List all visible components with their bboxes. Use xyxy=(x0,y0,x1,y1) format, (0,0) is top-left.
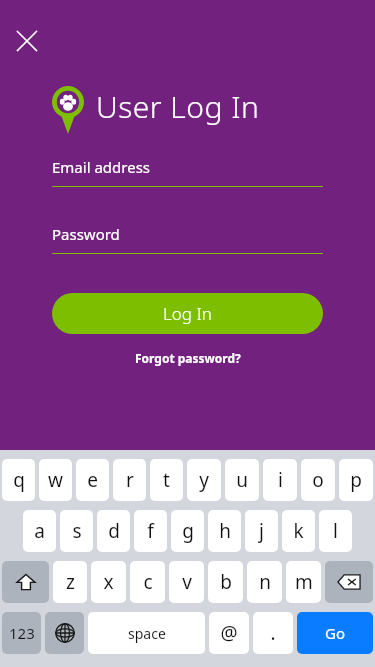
staticText: @ xyxy=(220,620,238,646)
button[interactable]: a xyxy=(23,510,56,552)
button[interactable]: c xyxy=(130,561,165,603)
button[interactable]: Password xyxy=(52,221,323,254)
button[interactable]: i xyxy=(263,459,297,501)
staticText: a xyxy=(34,518,45,544)
staticText: e xyxy=(87,467,98,493)
button[interactable]: Shift xyxy=(2,561,49,603)
button[interactable]: Forgot password? xyxy=(131,346,245,370)
button[interactable]: m xyxy=(286,561,321,603)
button[interactable]: f xyxy=(134,510,167,552)
button[interactable]: w xyxy=(39,459,72,501)
button[interactable]: Go xyxy=(297,612,373,654)
button[interactable]: x xyxy=(91,561,126,603)
staticText: q xyxy=(13,467,25,493)
staticText: space xyxy=(128,624,166,643)
button[interactable]: Log In xyxy=(52,293,323,334)
staticText: Go xyxy=(325,623,345,643)
staticText: u xyxy=(236,467,248,493)
button[interactable]: s xyxy=(60,510,93,552)
button[interactable]: e xyxy=(76,459,109,501)
button[interactable]: Backspace xyxy=(325,561,373,603)
button[interactable]: u xyxy=(225,459,259,501)
staticText: j xyxy=(259,518,264,544)
staticText: r xyxy=(126,467,134,493)
staticText: x xyxy=(103,569,114,595)
staticText: n xyxy=(259,569,271,595)
staticText: b xyxy=(220,569,232,595)
staticText: 123 xyxy=(9,623,35,643)
staticText: o xyxy=(312,467,324,493)
staticText: Email address xyxy=(52,157,151,177)
button[interactable]: v xyxy=(169,561,204,603)
button[interactable]: j xyxy=(245,510,278,552)
button[interactable]: p xyxy=(339,459,373,501)
button[interactable]: Close xyxy=(10,24,44,58)
button[interactable]: t xyxy=(150,459,183,501)
staticText: . xyxy=(270,620,276,646)
button[interactable]: d xyxy=(97,510,130,552)
staticText: p xyxy=(350,467,362,493)
staticText: i xyxy=(278,467,283,493)
button[interactable]: k xyxy=(282,510,315,552)
button[interactable]: g xyxy=(171,510,204,552)
staticText: t xyxy=(163,467,170,493)
staticText: c xyxy=(143,569,153,595)
staticText: Forgot password? xyxy=(135,350,241,366)
button[interactable]: h xyxy=(208,510,241,552)
button[interactable]: o xyxy=(301,459,335,501)
staticText: g xyxy=(182,518,194,544)
staticText: k xyxy=(293,518,304,544)
staticText: Password xyxy=(52,224,120,244)
button[interactable]: l xyxy=(319,510,352,552)
staticText: d xyxy=(108,518,120,544)
button[interactable]: z xyxy=(53,561,87,603)
button[interactable]: @ xyxy=(209,612,249,654)
button[interactable]: y xyxy=(187,459,221,501)
staticText: s xyxy=(72,518,82,544)
staticText: Log In xyxy=(163,302,212,325)
button[interactable]: Change keyboard xyxy=(45,612,84,654)
staticText: v xyxy=(182,569,192,595)
staticText: w xyxy=(48,467,63,493)
button[interactable]: 123 xyxy=(2,612,41,654)
staticText: f xyxy=(147,518,154,544)
staticText: m xyxy=(295,569,313,595)
staticText: l xyxy=(333,518,338,544)
staticText: h xyxy=(219,518,231,544)
button[interactable]: space xyxy=(88,612,205,654)
button[interactable]: b xyxy=(208,561,243,603)
button[interactable]: Email address xyxy=(52,154,323,187)
button[interactable]: . xyxy=(253,612,293,654)
button[interactable]: r xyxy=(113,459,146,501)
staticText: User Log In xyxy=(96,86,260,127)
staticText: z xyxy=(66,569,75,595)
button[interactable]: n xyxy=(247,561,282,603)
staticText: y xyxy=(199,467,209,493)
button[interactable]: q xyxy=(2,459,35,501)
